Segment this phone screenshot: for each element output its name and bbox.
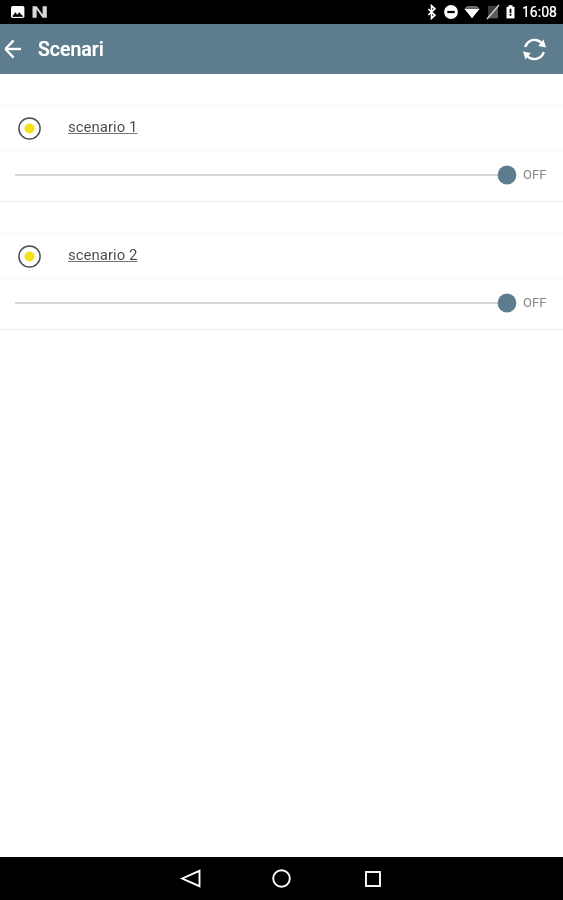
- button[interactable]: scenario 1: [0, 106, 563, 150]
- button[interactable]: Back: [0, 25, 26, 73]
- button[interactable]: Home: [236, 857, 326, 900]
- staticText: OFF: [523, 295, 547, 310]
- staticText: scenario 1: [68, 118, 138, 136]
- button[interactable]: Back: [146, 857, 236, 900]
- staticText: OFF: [523, 167, 547, 182]
- button[interactable]: Recents: [328, 857, 418, 900]
- staticText: 16:08: [522, 4, 557, 20]
- staticText: scenario 2: [68, 246, 138, 264]
- staticText: Scenari: [38, 38, 104, 61]
- button[interactable]: OFF: [0, 279, 563, 329]
- button[interactable]: OFF: [0, 151, 563, 201]
- button[interactable]: scenario 2: [0, 234, 563, 278]
- button[interactable]: Refresh: [510, 25, 558, 73]
